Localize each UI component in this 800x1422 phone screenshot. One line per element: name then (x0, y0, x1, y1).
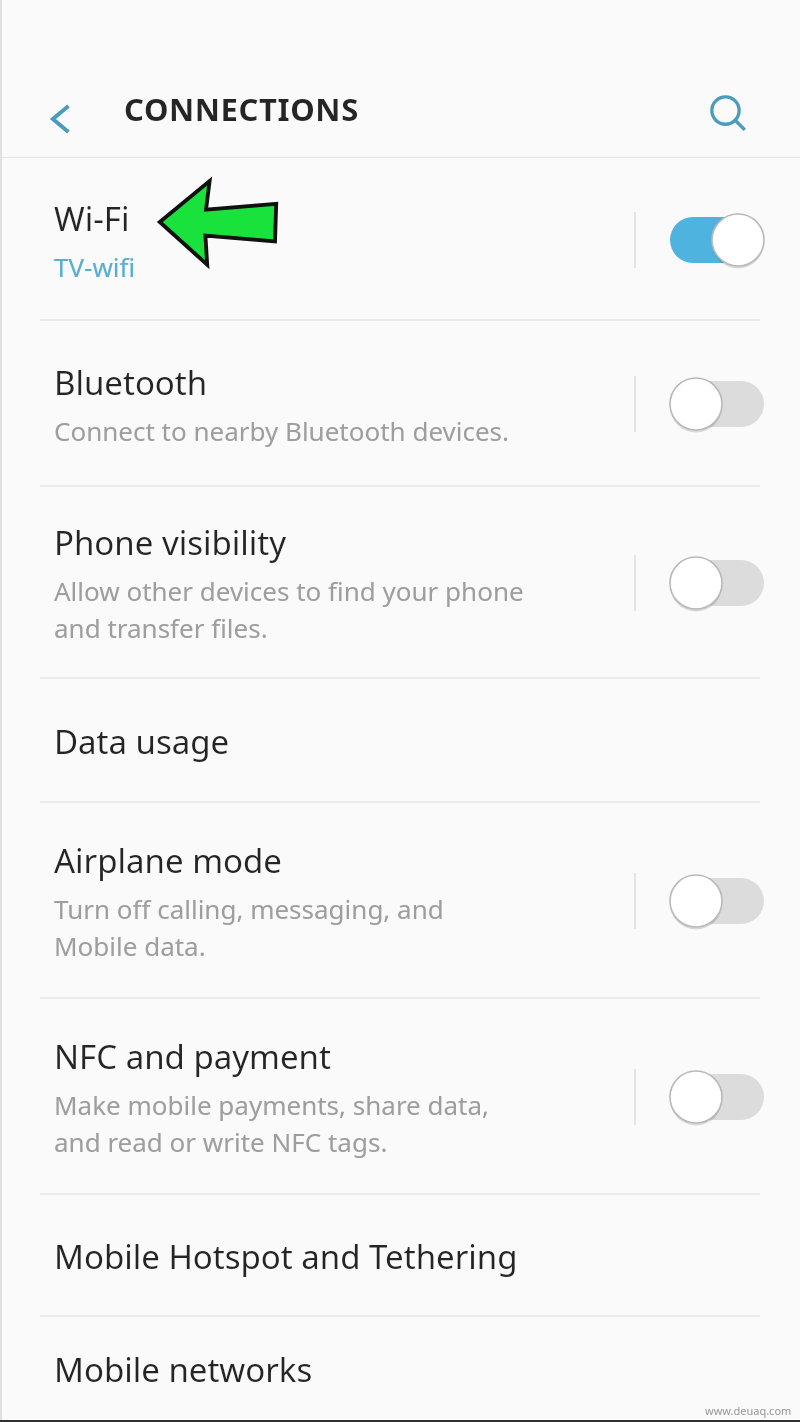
staticText: TV-wifi (54, 249, 136, 284)
staticText: www.deuaq.com (705, 1403, 792, 1418)
staticText: Mobile Hotspot and Tethering (54, 1234, 518, 1279)
button[interactable]: Toggle off (670, 557, 764, 609)
button[interactable]: Toggle off (670, 378, 764, 430)
button[interactable]: Back (26, 84, 96, 154)
staticText: CONNECTIONS (124, 88, 359, 130)
staticText: Bluetooth (54, 360, 208, 405)
button[interactable]: Phone visibility (0, 487, 800, 679)
button[interactable]: Toggle off (670, 1071, 764, 1123)
staticText: Wi-Fi (54, 196, 130, 241)
button[interactable]: Wi-Fi (0, 158, 800, 321)
button[interactable]: Airplane mode (0, 803, 800, 999)
button[interactable]: Data usage (0, 679, 800, 803)
button[interactable]: Toggle off (670, 875, 764, 927)
staticText: Data usage (54, 719, 230, 764)
button[interactable]: Bluetooth (0, 321, 800, 487)
staticText: Airplane mode (54, 838, 282, 883)
staticText: Turn off calling, messaging, and Mobile … (54, 891, 444, 964)
staticText: Mobile networks (54, 1347, 313, 1392)
button[interactable]: Mobile networks (0, 1317, 800, 1422)
button[interactable]: Search (686, 72, 772, 158)
button[interactable]: Toggle on (670, 214, 764, 266)
button[interactable]: NFC and payment (0, 999, 800, 1195)
staticText: Connect to nearby Bluetooth devices. (54, 413, 510, 448)
staticText: NFC and payment (54, 1034, 331, 1079)
staticText: Allow other devices to find your phone a… (54, 573, 524, 646)
button[interactable]: Mobile Hotspot and Tethering (0, 1195, 800, 1317)
staticText: Make mobile payments, share data, and re… (54, 1087, 490, 1160)
staticText: Phone visibility (54, 520, 287, 565)
